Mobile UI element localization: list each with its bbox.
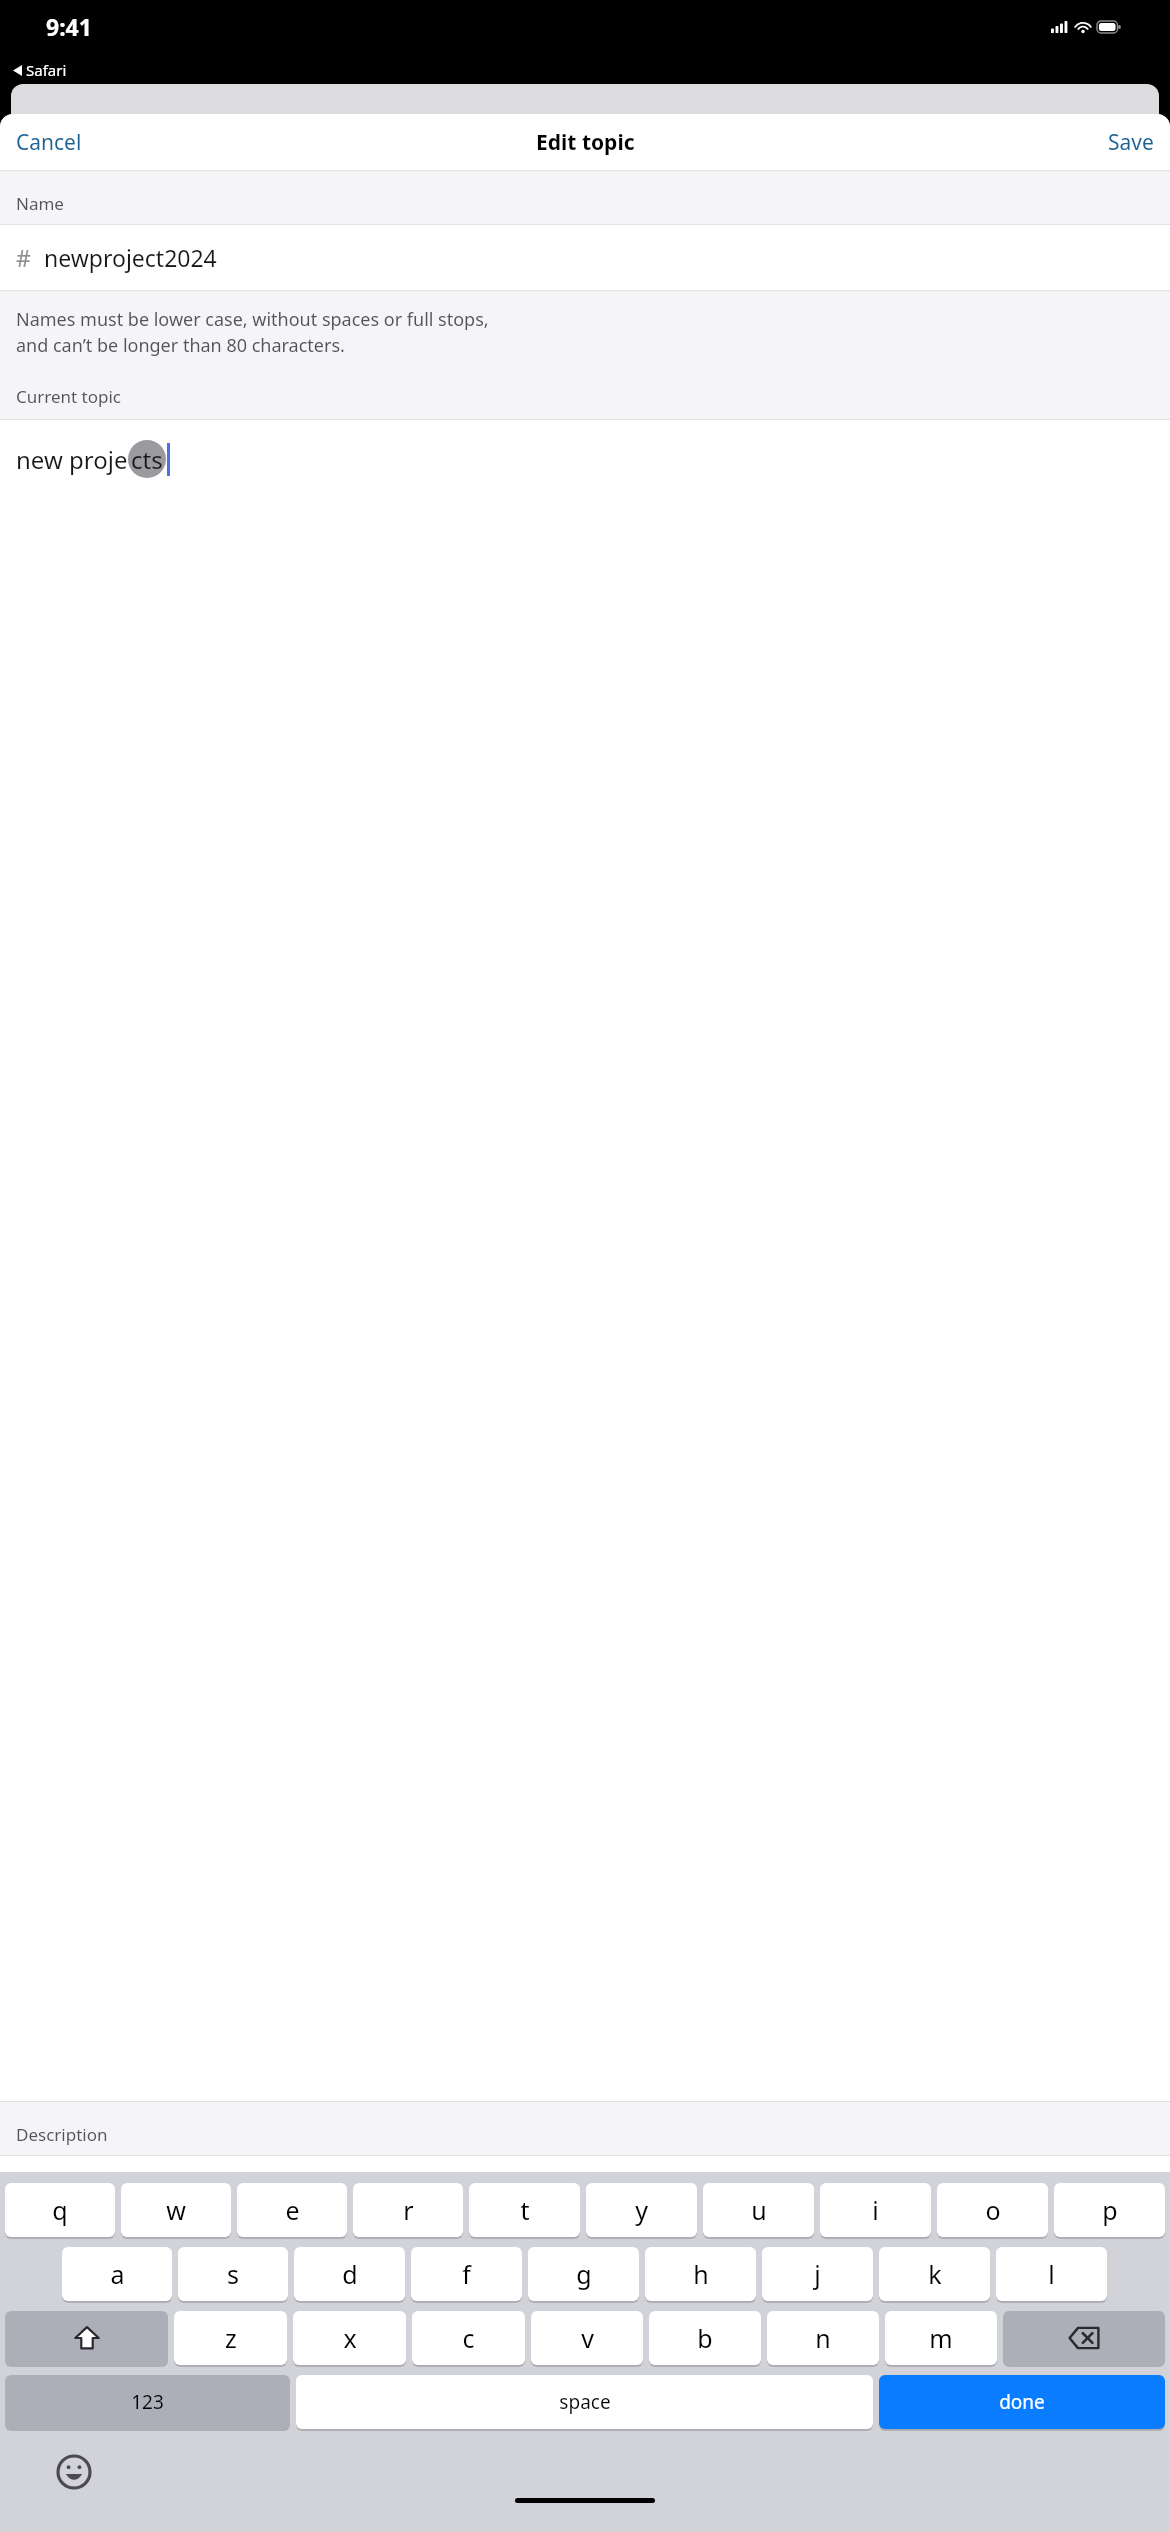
- staticText: z: [225, 2321, 237, 2355]
- staticText: k: [928, 2257, 942, 2291]
- button[interactable]: c: [412, 2311, 525, 2365]
- staticText: Edit topic: [536, 128, 635, 157]
- button[interactable]: x: [293, 2311, 406, 2365]
- button[interactable]: Save: [1092, 114, 1170, 170]
- button[interactable]: Safari: [13, 56, 1170, 84]
- button[interactable]: k: [879, 2247, 990, 2301]
- staticText: q: [52, 2193, 68, 2227]
- staticText: Current topic: [16, 385, 122, 408]
- other: Shift: [5, 2311, 168, 2365]
- button[interactable]: i: [820, 2183, 931, 2237]
- button[interactable]: f: [411, 2247, 522, 2301]
- staticText: f: [462, 2257, 471, 2291]
- other: Backspace: [1003, 2311, 1165, 2365]
- staticText: m: [929, 2321, 953, 2355]
- button[interactable]: l: [996, 2247, 1107, 2301]
- staticText: Cancel: [16, 128, 82, 157]
- button[interactable]: w: [121, 2183, 231, 2237]
- staticText: 9:41: [46, 11, 92, 42]
- button[interactable]: b: [649, 2311, 761, 2365]
- button[interactable]: [5, 2311, 168, 2365]
- button[interactable]: space: [296, 2375, 873, 2429]
- staticText: done: [999, 2389, 1045, 2415]
- button[interactable]: h: [645, 2247, 756, 2301]
- staticText: h: [693, 2257, 709, 2291]
- staticText: y: [635, 2193, 648, 2227]
- staticText: r: [403, 2193, 414, 2227]
- staticText: s: [227, 2257, 239, 2291]
- staticText: u: [751, 2193, 767, 2227]
- staticText: c: [462, 2321, 475, 2355]
- button[interactable]: o: [937, 2183, 1048, 2237]
- button[interactable]: #: [0, 225, 1170, 290]
- staticText: d: [342, 2257, 358, 2291]
- staticText: n: [815, 2321, 831, 2355]
- staticText: g: [576, 2257, 592, 2291]
- staticText: a: [110, 2257, 125, 2291]
- staticText: Save: [1108, 128, 1154, 157]
- button[interactable]: u: [703, 2183, 814, 2237]
- staticText: e: [285, 2193, 300, 2227]
- button[interactable]: t: [469, 2183, 580, 2237]
- staticText: w: [166, 2193, 186, 2227]
- button[interactable]: y: [586, 2183, 697, 2237]
- button[interactable]: n: [767, 2311, 879, 2365]
- staticText: Names must be lower case, without spaces…: [16, 307, 489, 358]
- button[interactable]: done: [879, 2375, 1165, 2429]
- button[interactable]: m: [885, 2311, 997, 2365]
- staticText: i: [872, 2193, 879, 2227]
- button[interactable]: r: [353, 2183, 463, 2237]
- button[interactable]: z: [174, 2311, 287, 2365]
- staticText: Description: [16, 2123, 108, 2146]
- staticText: #: [16, 242, 31, 273]
- staticText: b: [697, 2321, 713, 2355]
- button[interactable]: new proje: [0, 420, 1170, 2101]
- button[interactable]: Cancel: [0, 114, 98, 170]
- staticText: Safari: [26, 60, 67, 80]
- button[interactable]: v: [531, 2311, 643, 2365]
- staticText: newproject2024: [44, 242, 217, 273]
- button[interactable]: d: [294, 2247, 405, 2301]
- button[interactable]: [1003, 2311, 1165, 2365]
- staticText: 123: [131, 2389, 164, 2415]
- button[interactable]: 123: [5, 2375, 290, 2429]
- staticText: new proje: [16, 443, 128, 476]
- button[interactable]: g: [528, 2247, 639, 2301]
- staticText: v: [581, 2321, 594, 2355]
- staticText: t: [520, 2193, 530, 2227]
- button[interactable]: j: [762, 2247, 873, 2301]
- button[interactable]: s: [178, 2247, 288, 2301]
- button[interactable]: p: [1054, 2183, 1165, 2237]
- staticText: p: [1102, 2193, 1118, 2227]
- staticText: x: [343, 2321, 357, 2355]
- button[interactable]: a: [62, 2247, 172, 2301]
- staticText: j: [814, 2257, 821, 2291]
- staticText: o: [985, 2193, 1001, 2227]
- button[interactable]: Emoji keyboard: [54, 2452, 94, 2492]
- staticText: space: [559, 2389, 611, 2415]
- staticText: Name: [16, 192, 64, 215]
- button[interactable]: e: [237, 2183, 347, 2237]
- staticText: cts: [131, 443, 163, 476]
- staticText: l: [1048, 2257, 1055, 2291]
- button[interactable]: q: [5, 2183, 115, 2237]
